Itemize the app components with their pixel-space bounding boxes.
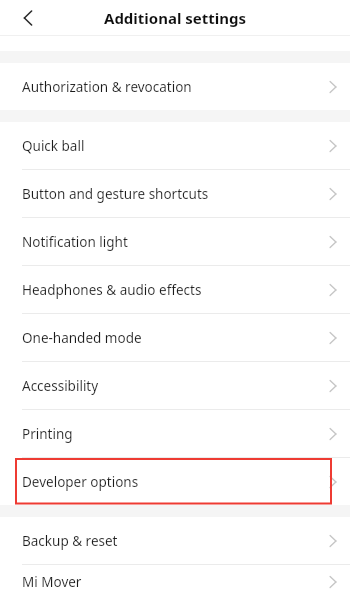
staticText: Headphones & audio effects (22, 281, 202, 299)
staticText: Additional settings (104, 8, 247, 28)
button[interactable]: Quick ball (0, 122, 350, 169)
button[interactable]: Printing (0, 410, 350, 457)
staticText: Mi Mover (22, 573, 82, 591)
staticText: Accessibility (22, 377, 99, 395)
button[interactable]: Backup & reset (0, 517, 350, 564)
staticText: Backup & reset (22, 532, 118, 550)
staticText: Authorization & revocation (22, 78, 192, 96)
button[interactable]: One-handed mode (0, 314, 350, 361)
button[interactable]: Back (15, 5, 41, 31)
button[interactable]: Accessibility (0, 362, 350, 409)
staticText: Printing (22, 425, 73, 443)
staticText: Notification light (22, 233, 128, 251)
button[interactable]: Notification light (0, 218, 350, 265)
button[interactable]: Mi Mover (0, 565, 350, 598)
button[interactable]: Developer options (0, 458, 350, 505)
button[interactable]: Button and gesture shortcuts (0, 170, 350, 217)
button[interactable]: Headphones & audio effects (0, 266, 350, 313)
staticText: Button and gesture shortcuts (22, 185, 209, 203)
staticText: Quick ball (22, 137, 85, 155)
staticText: Developer options (22, 473, 139, 491)
button[interactable]: Authorization & revocation (0, 63, 350, 110)
staticText: One-handed mode (22, 329, 142, 347)
